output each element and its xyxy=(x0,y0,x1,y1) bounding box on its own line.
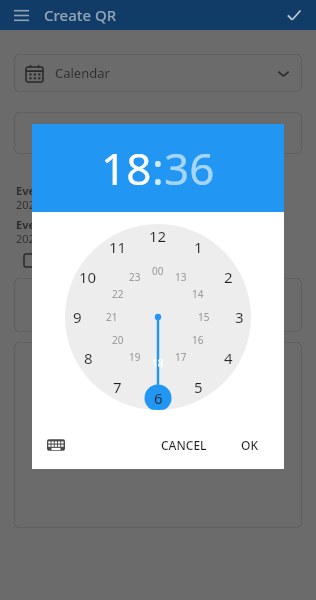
staticText: 12 xyxy=(149,226,167,246)
staticText: 6 xyxy=(154,388,163,408)
staticText: 36 xyxy=(164,138,215,198)
button[interactable]: Menu xyxy=(8,2,34,28)
staticText: 9 xyxy=(73,307,82,327)
staticText: 11 xyxy=(109,237,127,257)
staticText: 20 xyxy=(112,333,124,347)
staticText: 21 xyxy=(106,310,118,324)
staticText: 18 xyxy=(101,138,152,198)
staticText: 2 xyxy=(224,267,233,287)
button[interactable]: All day xyxy=(24,254,37,267)
button[interactable]: 18 xyxy=(101,138,152,198)
staticText: 00 xyxy=(152,264,164,278)
staticText: : xyxy=(152,138,164,198)
staticText: 7 xyxy=(113,377,122,397)
staticText: 3 xyxy=(235,307,244,327)
button[interactable]: 36 xyxy=(164,138,215,198)
button[interactable]: Save xyxy=(282,3,306,27)
staticText: Event title xyxy=(16,183,73,198)
staticText: 22 xyxy=(112,287,124,301)
button[interactable]: Calendar xyxy=(14,54,302,92)
button[interactable] xyxy=(14,112,302,154)
button[interactable]: OK xyxy=(233,431,266,459)
staticText: 17 xyxy=(175,350,187,364)
staticText: 1 xyxy=(194,237,203,257)
staticText: Event end xyxy=(16,217,71,232)
staticText: 5 xyxy=(194,377,203,397)
staticText: 8 xyxy=(84,348,93,368)
staticText: 23 xyxy=(129,270,141,284)
staticText: 2025-01-01 11:00 xyxy=(16,231,105,246)
button[interactable]: 1 xyxy=(65,224,251,410)
staticText: Calendar xyxy=(55,64,110,82)
button[interactable]: CANCEL xyxy=(153,431,215,459)
staticText: OK xyxy=(241,437,258,453)
staticText: 13 xyxy=(175,270,187,284)
staticText: 16 xyxy=(192,333,204,347)
staticText: 10 xyxy=(79,267,97,287)
staticText: 18 xyxy=(152,356,164,370)
button[interactable]: Switch to text input xyxy=(46,435,66,455)
staticText: 15 xyxy=(198,310,210,324)
staticText: 14 xyxy=(192,287,204,301)
button[interactable] xyxy=(14,278,302,332)
button[interactable] xyxy=(14,342,302,528)
staticText: 19 xyxy=(129,350,141,364)
staticText: 4 xyxy=(224,348,233,368)
staticText: 2025-01-01 10:00 xyxy=(16,197,105,212)
staticText: CANCEL xyxy=(161,437,207,453)
staticText: Create QR xyxy=(44,5,117,25)
